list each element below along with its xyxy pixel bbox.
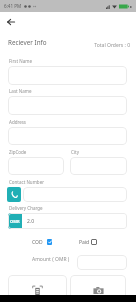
- button[interactable]: [70, 157, 127, 175]
- button[interactable]: Attach document: [8, 275, 67, 302]
- button[interactable]: [8, 157, 64, 175]
- button[interactable]: Take photo: [70, 275, 126, 302]
- staticText: OMR: [10, 219, 20, 224]
- button[interactable]: Call: [7, 187, 21, 202]
- button[interactable]: [77, 255, 127, 270]
- button[interactable]: [8, 127, 127, 145]
- staticText: 6:41 PM: [4, 3, 22, 9]
- staticText: 2.0: [27, 218, 35, 225]
- button[interactable]: [8, 66, 127, 85]
- staticText: Delivery Charge: [9, 205, 43, 211]
- button[interactable]: COD: [32, 236, 52, 248]
- staticText: COD: [32, 239, 43, 246]
- staticText: Contact Number: [9, 179, 45, 185]
- staticText: Reciever Info: [8, 38, 47, 47]
- button[interactable]: Back: [3, 14, 19, 30]
- staticText: First Name: [9, 58, 32, 64]
- staticText: ZipCode: [9, 149, 27, 155]
- button[interactable]: [23, 187, 127, 202]
- staticText: City: [71, 149, 79, 155]
- staticText: Address: [9, 119, 27, 125]
- staticText: Amount ( OMR ): [32, 256, 70, 263]
- button[interactable]: Paid: [79, 236, 97, 248]
- staticText: Total Orders : 0: [0, 42, 130, 49]
- button[interactable]: OMR: [8, 213, 127, 229]
- staticText: Paid: [79, 239, 90, 246]
- staticText: Last Name: [9, 88, 32, 94]
- button[interactable]: [8, 96, 127, 115]
